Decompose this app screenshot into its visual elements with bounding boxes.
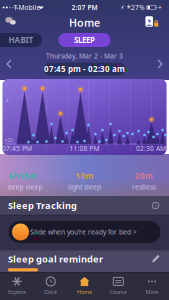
staticText: Explore [8, 288, 26, 296]
staticText: z [6, 96, 9, 104]
button[interactable]: HABIT [0, 33, 42, 47]
button[interactable]: 07:45 pm - 02:30 am [43, 62, 125, 75]
staticText: Sleep Tracking [8, 199, 77, 212]
staticText: 02:30 AM [136, 144, 166, 153]
button[interactable]: SLEEP [58, 33, 110, 47]
button[interactable]: Previous night [6, 59, 12, 68]
staticText: Thursday, Mar 2 - Mar 3 [46, 52, 123, 60]
staticText: T-Mobile [13, 3, 40, 12]
staticText: Sleep goal reminder [8, 253, 103, 265]
staticText: restless [132, 183, 156, 191]
button[interactable]: Home [68, 274, 100, 298]
button[interactable]: Messages [4, 16, 17, 26]
staticText: 11:08 PM [69, 144, 99, 153]
staticText: * [126, 3, 130, 14]
button[interactable]: Explore [1, 274, 33, 298]
staticText: 20m [135, 171, 153, 181]
button[interactable]: Course [102, 274, 134, 298]
staticText: 6h15m [9, 171, 37, 181]
button[interactable]: Edit sleep goal [151, 254, 160, 263]
staticText: SLEEP [74, 35, 95, 45]
staticText: Home [69, 15, 100, 30]
staticText: Course [110, 288, 127, 296]
staticText: i [155, 202, 156, 209]
staticText: 27% [131, 3, 145, 12]
staticText: Slide when you're ready for bed > [30, 228, 137, 236]
button[interactable]: Device [145, 16, 159, 27]
staticText: zZz [5, 136, 14, 144]
button[interactable]: Next night [157, 59, 163, 68]
staticText: deep sleep [7, 183, 42, 191]
staticText: light sleep [68, 183, 101, 191]
staticText: Clock [44, 288, 57, 296]
button[interactable]: Slide when you're ready for bed [8, 221, 160, 243]
staticText: Home [77, 288, 92, 296]
staticText: 2:07 PM [71, 3, 97, 12]
staticText: HABIT [8, 35, 33, 45]
button[interactable]: More [136, 274, 168, 298]
staticText: 07:45 PM [2, 144, 32, 153]
staticText: 07:45 pm - 02:30 am [44, 64, 125, 74]
staticText: + [158, 3, 162, 12]
button[interactable]: Clock [35, 274, 67, 298]
staticText: More [145, 288, 158, 296]
button[interactable]: Sleep tracking info [151, 201, 160, 210]
staticText: 10m [75, 171, 93, 181]
